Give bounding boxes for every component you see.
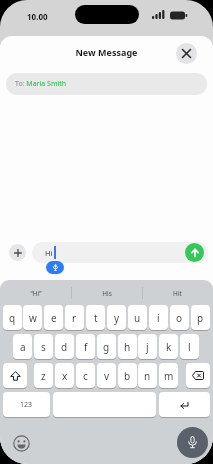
staticText: d [61,340,68,354]
button[interactable] [186,363,210,388]
button[interactable]: t [86,305,105,330]
button[interactable]: d [55,334,74,359]
button[interactable]: y [107,305,126,330]
button[interactable]: j [138,334,157,359]
staticText: k [166,340,172,354]
button[interactable] [177,427,208,458]
staticText: y [114,311,120,325]
staticText: h [124,340,131,354]
staticText: f [84,340,88,354]
button[interactable]: p [191,305,210,330]
button[interactable] [53,392,156,417]
staticText: v [104,369,110,383]
staticText: New Message [0,46,213,58]
button[interactable]: e [44,305,63,330]
button[interactable]: m [159,363,178,388]
staticText: g [103,340,110,354]
button[interactable]: a [13,334,32,359]
button[interactable]: h [118,334,137,359]
staticText: q [9,311,16,325]
staticText: x [62,369,68,383]
staticText: l [188,340,191,354]
button[interactable]: o [170,305,189,330]
staticText: j [146,340,149,354]
staticText: Hit [173,289,182,298]
staticText: s [41,340,46,354]
staticText: i [157,311,160,325]
staticText: o [176,311,183,325]
button[interactable] [9,244,26,261]
button[interactable]: Hi [32,242,208,263]
button[interactable] [176,43,197,64]
button[interactable]: c [76,363,95,388]
staticText: 10.00 [27,11,48,22]
button[interactable]: 123 [3,392,50,417]
staticText: His [102,289,112,298]
staticText: Hi [45,248,53,258]
staticText: u [134,311,141,325]
staticText: a [20,340,26,354]
button[interactable]: z [34,363,53,388]
button[interactable]: i [149,305,168,330]
button[interactable] [185,243,204,262]
button[interactable]: “Hi” [0,285,71,301]
staticText: e [51,311,57,325]
button[interactable] [3,363,27,388]
staticText: z [41,369,46,383]
button[interactable]: v [97,363,116,388]
button[interactable]: Hit [142,285,213,301]
button[interactable]: n [138,363,157,388]
button[interactable]: His [71,285,142,301]
button[interactable]: f [76,334,95,359]
button[interactable] [159,392,210,417]
button[interactable]: s [34,334,53,359]
staticText: To: Maria Smith [15,79,67,89]
button[interactable]: q [3,305,22,330]
button[interactable]: To: Maria Smith [6,73,207,95]
staticText: t [94,311,98,325]
staticText: w [29,311,37,325]
staticText: 123 [20,400,33,410]
button[interactable]: k [159,334,178,359]
staticText: r [72,311,77,325]
button[interactable]: g [97,334,116,359]
staticText: “Hi” [30,289,42,298]
staticText: b [124,369,131,383]
button[interactable]: b [118,363,137,388]
button[interactable]: w [23,305,42,330]
button[interactable]: u [128,305,147,330]
button[interactable]: l [180,334,199,359]
staticText: m [164,369,174,383]
button[interactable]: x [55,363,74,388]
staticText: c [83,369,88,383]
staticText: p [197,311,204,325]
button[interactable] [12,434,31,453]
staticText: n [144,369,151,383]
button[interactable]: r [65,305,84,330]
